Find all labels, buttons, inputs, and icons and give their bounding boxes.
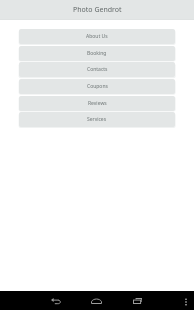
staticText: Services: [87, 116, 107, 123]
button[interactable]: About Us: [19, 29, 175, 44]
staticText: About Us: [86, 33, 108, 40]
button[interactable]: Home: [86, 293, 106, 308]
button[interactable]: Recent apps: [127, 293, 147, 308]
staticText: Reviews: [88, 100, 107, 107]
staticText: Contacts: [87, 66, 108, 73]
button[interactable]: Back: [46, 293, 66, 308]
button[interactable]: Booking: [19, 46, 175, 61]
staticText: Photo Gendrot: [73, 5, 122, 15]
button[interactable]: Coupons: [19, 79, 175, 94]
staticText: Booking: [87, 50, 107, 57]
button[interactable]: Contacts: [19, 62, 175, 77]
staticText: Coupons: [87, 83, 108, 90]
button[interactable]: More options: [179, 294, 193, 309]
button[interactable]: Reviews: [19, 96, 175, 111]
button[interactable]: Services: [19, 112, 175, 127]
